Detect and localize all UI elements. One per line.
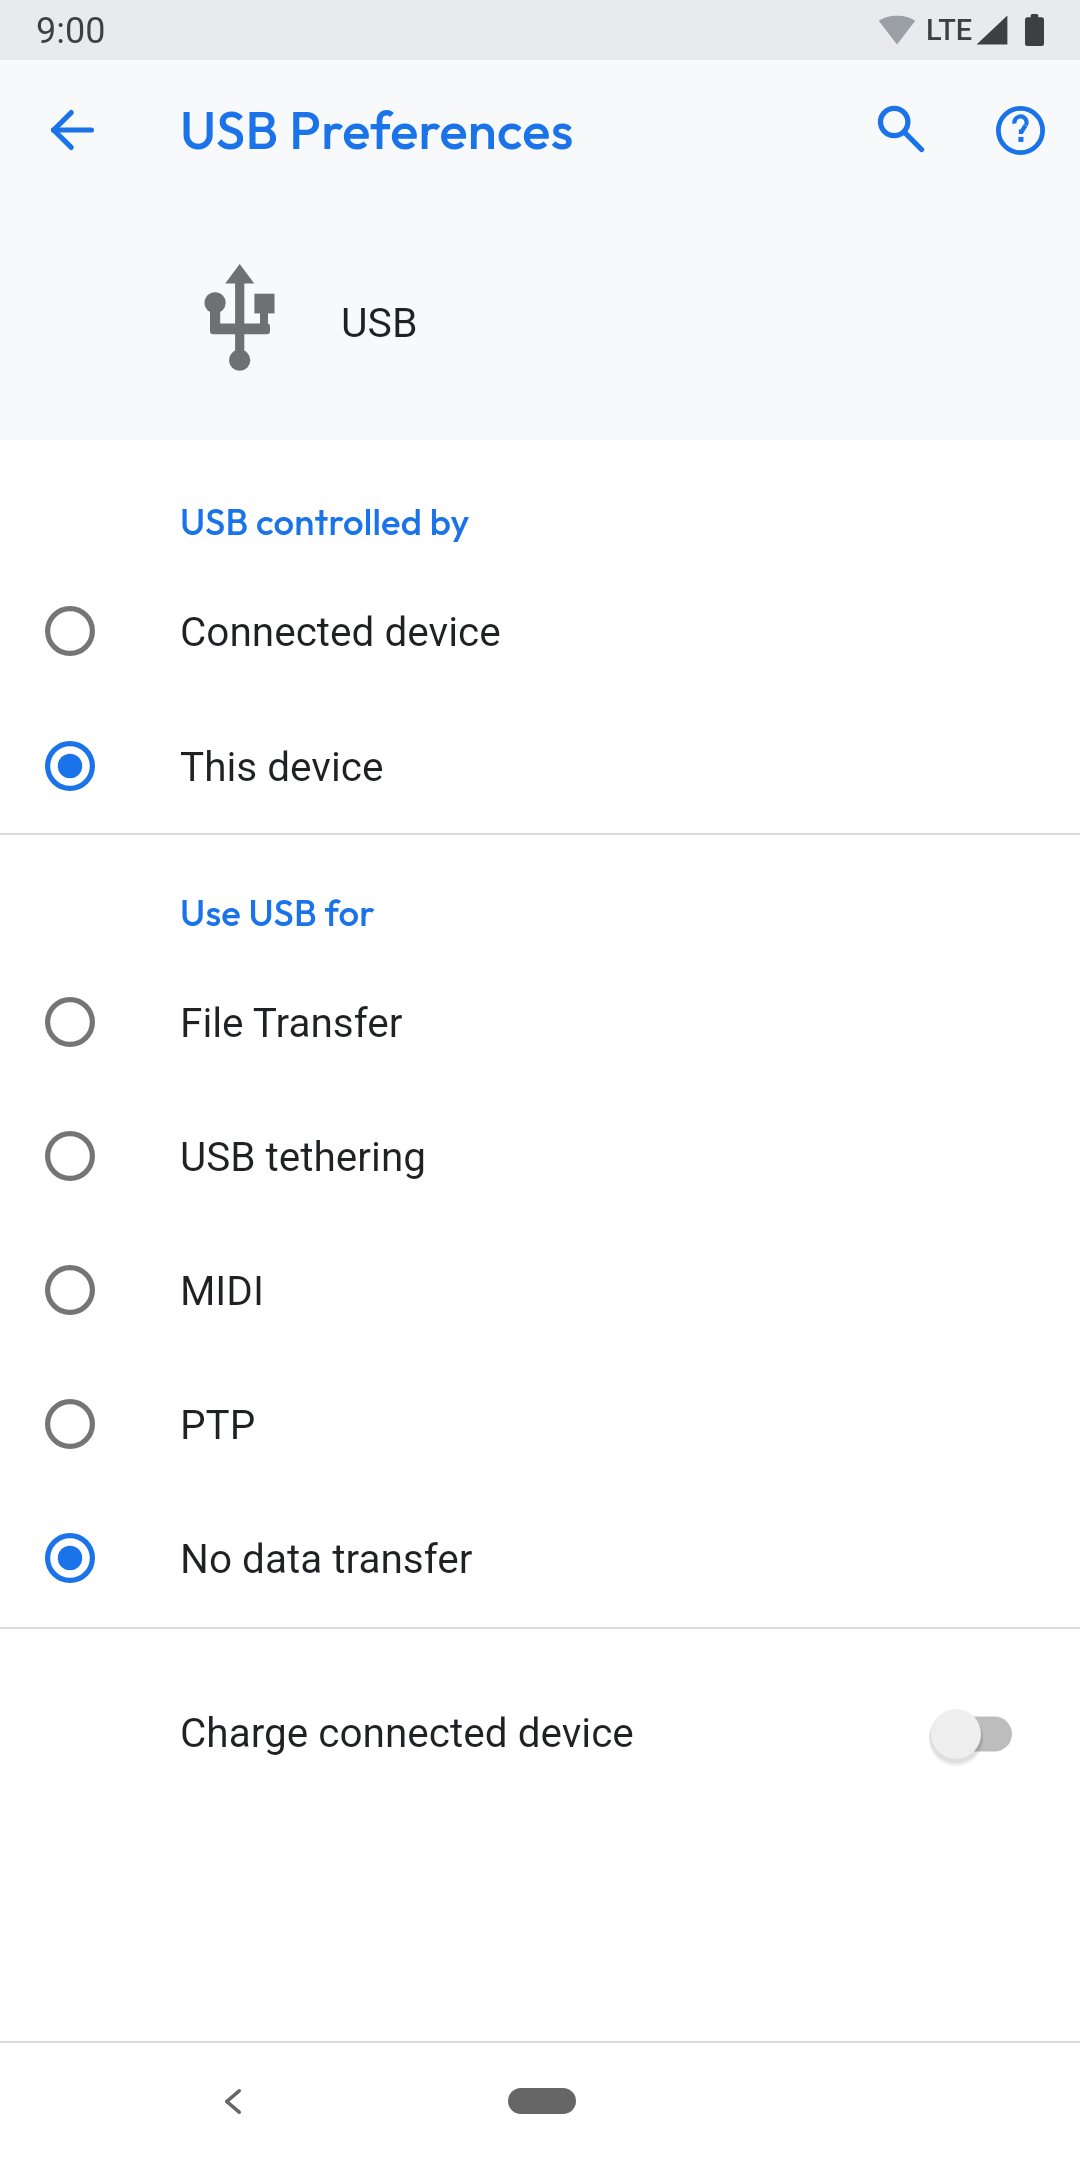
staticText: Use USB for [180, 889, 375, 935]
staticText: USB Preferences [180, 96, 574, 162]
button[interactable]: MIDI [0, 1223, 1080, 1357]
button[interactable]: No data transfer [0, 1491, 1080, 1625]
button[interactable]: Home [432, 2056, 652, 2146]
staticText: LTE [926, 13, 973, 47]
button[interactable]: PTP [0, 1357, 1080, 1491]
staticText: This device [180, 743, 384, 790]
button[interactable]: Search [853, 81, 949, 177]
staticText: No data transfer [180, 1535, 473, 1582]
button[interactable]: Connected device [0, 564, 1080, 698]
staticText: USB tethering [180, 1133, 427, 1180]
button[interactable]: Charge connected device [0, 1637, 1080, 1827]
staticText: Charge connected device [180, 1709, 634, 1756]
button[interactable]: Help [972, 82, 1068, 178]
staticText: File Transfer [180, 999, 403, 1046]
staticText: USB controlled by [180, 498, 470, 544]
staticText: PTP [180, 1401, 256, 1448]
button[interactable]: USB tethering [0, 1089, 1080, 1223]
staticText: MIDI [180, 1267, 264, 1314]
button[interactable]: This device [0, 699, 1080, 833]
staticText: 9:00 [36, 10, 106, 52]
button[interactable]: Back [183, 2051, 283, 2151]
button[interactable]: Back [24, 82, 120, 178]
button[interactable]: File Transfer [0, 955, 1080, 1089]
staticText: USB [341, 299, 418, 347]
staticText: Connected device [180, 608, 501, 655]
